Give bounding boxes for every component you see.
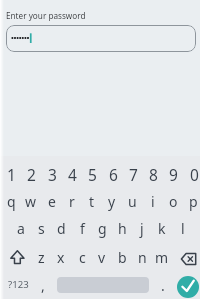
- staticText: g: [98, 219, 107, 238]
- staticText: Enter your password: [6, 10, 86, 21]
- staticText: b: [118, 248, 127, 267]
- button[interactable]: q: [0, 187, 25, 215]
- button[interactable]: d: [47, 214, 75, 242]
- button[interactable]: [177, 247, 200, 271]
- staticText: 3: [48, 164, 57, 185]
- button[interactable]: 9: [159, 160, 187, 188]
- button[interactable]: 5: [78, 160, 106, 188]
- staticText: l: [181, 219, 185, 238]
- button[interactable]: 0: [180, 160, 200, 188]
- staticText: w: [25, 192, 37, 211]
- button[interactable]: [177, 276, 199, 298]
- staticText: o: [169, 192, 178, 211]
- button[interactable]: x: [47, 243, 75, 271]
- button[interactable]: z: [27, 243, 55, 271]
- staticText: n: [138, 248, 147, 267]
- button[interactable]: b: [108, 243, 136, 271]
- button[interactable]: .: [149, 271, 177, 299]
- staticText: 2: [27, 164, 36, 185]
- staticText: i: [151, 192, 155, 211]
- button[interactable]: l: [169, 214, 197, 242]
- staticText: y: [108, 192, 116, 211]
- staticText: 0: [190, 164, 199, 185]
- button[interactable]: r: [58, 187, 86, 215]
- button[interactable]: c: [68, 243, 96, 271]
- button[interactable]: w: [17, 187, 45, 215]
- staticText: x: [57, 248, 65, 267]
- button[interactable]: 6: [99, 160, 127, 188]
- button[interactable]: 4: [58, 160, 86, 188]
- button[interactable]: 3: [38, 160, 66, 188]
- staticText: 6: [109, 164, 118, 185]
- button[interactable]: 2: [17, 160, 45, 188]
- staticText: a: [17, 219, 25, 238]
- staticText: d: [57, 219, 66, 238]
- staticText: t: [89, 192, 95, 211]
- staticText: h: [118, 219, 127, 238]
- staticText: 1: [7, 164, 16, 185]
- staticText: 5: [88, 164, 97, 185]
- button[interactable]: 7: [119, 160, 147, 188]
- button[interactable]: o: [159, 187, 187, 215]
- staticText: 9: [169, 164, 178, 185]
- button[interactable]: k: [148, 214, 176, 242]
- button[interactable]: [5, 245, 30, 270]
- button[interactable]: ,: [29, 271, 57, 299]
- button[interactable]: h: [108, 214, 136, 242]
- staticText: e: [48, 192, 56, 211]
- button[interactable]: e: [38, 187, 66, 215]
- staticText: 7: [129, 164, 138, 185]
- staticText: 4: [68, 164, 77, 185]
- button[interactable]: 1: [0, 160, 25, 188]
- button[interactable]: f: [68, 214, 96, 242]
- staticText: .: [161, 276, 165, 295]
- button[interactable]: n: [128, 243, 156, 271]
- staticText: u: [128, 192, 137, 211]
- button[interactable]: y: [98, 187, 126, 215]
- button[interactable]: [6, 25, 196, 52]
- staticText: k: [158, 219, 166, 238]
- staticText: c: [79, 248, 86, 267]
- button[interactable]: 8: [139, 160, 167, 188]
- staticText: 8: [149, 164, 158, 185]
- staticText: p: [189, 192, 198, 211]
- button[interactable]: i: [139, 187, 167, 215]
- staticText: z: [38, 248, 45, 267]
- button[interactable]: u: [118, 187, 146, 215]
- button[interactable]: ?123: [4, 270, 32, 298]
- staticText: q: [7, 192, 16, 211]
- button[interactable]: j: [128, 214, 156, 242]
- staticText: ,: [41, 276, 45, 295]
- button[interactable]: s: [27, 214, 55, 242]
- staticText: v: [98, 248, 106, 267]
- staticText: j: [140, 219, 144, 238]
- button[interactable]: p: [179, 187, 200, 215]
- button[interactable]: g: [88, 214, 116, 242]
- button[interactable]: a: [7, 214, 35, 242]
- button[interactable]: t: [78, 187, 106, 215]
- button[interactable]: m: [148, 243, 176, 271]
- button[interactable]: v: [88, 243, 116, 271]
- staticText: f: [80, 219, 85, 238]
- staticText: r: [69, 192, 75, 211]
- staticText: m: [155, 248, 169, 267]
- staticText: ?123: [8, 278, 29, 291]
- staticText: s: [38, 219, 45, 238]
